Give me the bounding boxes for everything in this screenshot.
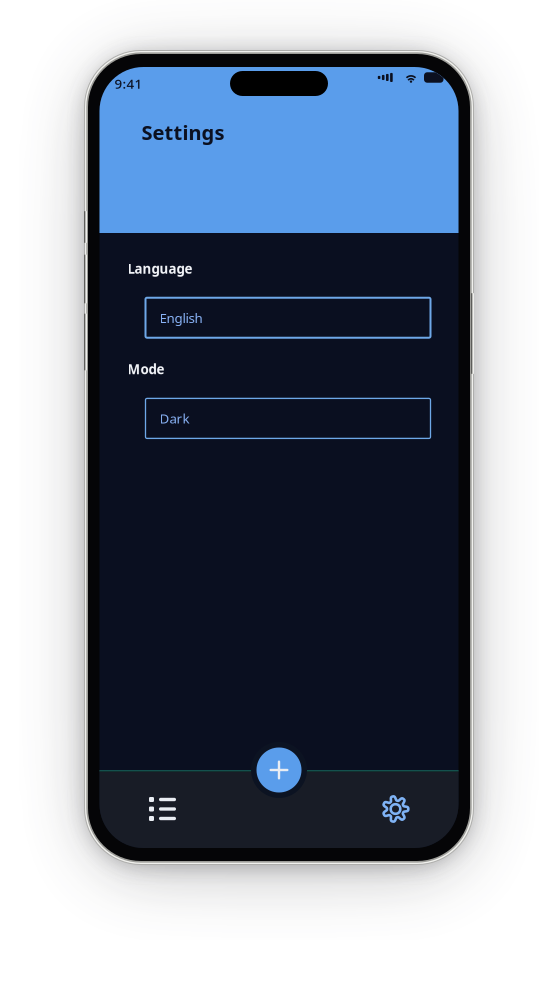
staticText: Settings bbox=[141, 119, 224, 146]
button[interactable]: Add bbox=[251, 742, 307, 798]
staticText: Dark bbox=[159, 410, 189, 427]
staticText: Mode bbox=[127, 360, 164, 378]
button[interactable]: Dark bbox=[145, 398, 430, 438]
staticText: Language bbox=[127, 260, 192, 277]
staticText: English bbox=[159, 309, 202, 327]
button[interactable]: Settings bbox=[359, 770, 431, 848]
button[interactable]: English bbox=[145, 298, 430, 338]
button[interactable]: List bbox=[126, 770, 198, 848]
staticText: 9:41 bbox=[114, 75, 142, 92]
